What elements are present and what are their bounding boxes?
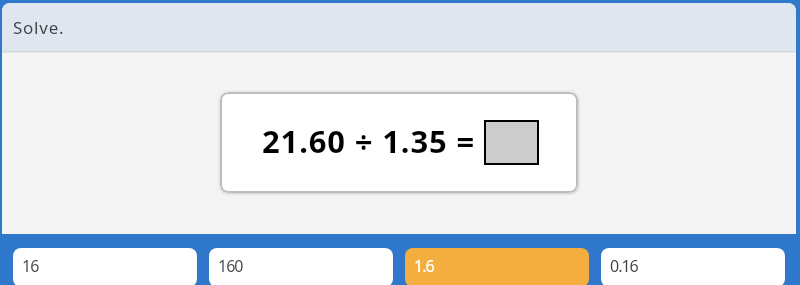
button[interactable]: 0.16: [601, 248, 785, 285]
staticText: 16: [22, 255, 39, 277]
staticText: 160: [218, 255, 243, 277]
staticText: 0.16: [610, 255, 638, 277]
button[interactable]: Empty answer box: [484, 120, 539, 165]
button[interactable]: 1.6: [405, 248, 589, 285]
staticText: Solve.: [13, 16, 65, 39]
button[interactable]: 160: [209, 248, 393, 285]
staticText: 1.6: [414, 255, 434, 277]
button[interactable]: 16: [13, 248, 197, 285]
staticText: 21.60 ÷ 1.35 =: [262, 120, 476, 162]
